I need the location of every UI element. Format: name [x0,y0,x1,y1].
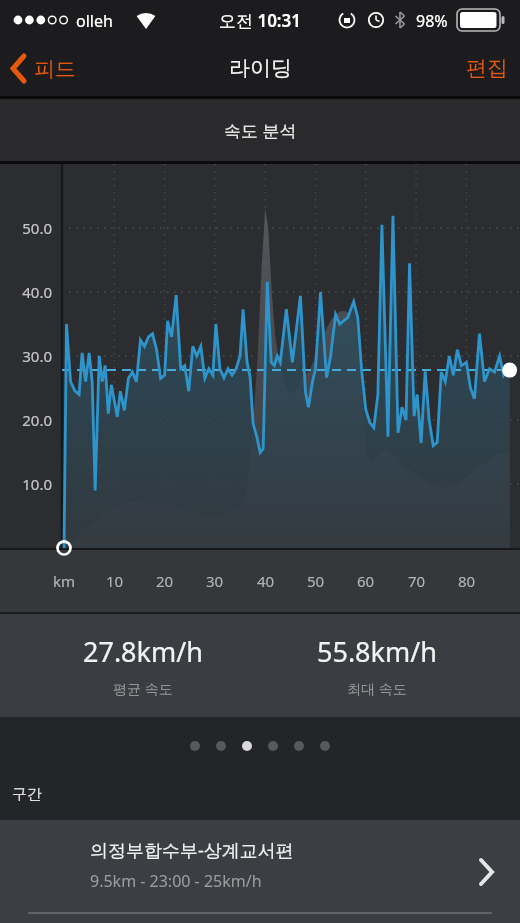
staticText: 편집 [466,55,508,81]
staticText: 속도 분석 [224,119,297,142]
staticText: 27.8km/h [83,633,203,670]
staticText: 라이딩 [229,55,292,81]
staticText: olleh [76,10,113,32]
staticText: 평균 속도 [113,679,173,698]
staticText: km [53,571,76,591]
staticText: 30 [206,571,224,591]
button[interactable] [294,741,304,751]
button[interactable]: 55.8km/h [257,614,497,717]
staticText: 20.0 [22,410,52,430]
staticText: 10.0 [22,474,52,494]
button[interactable] [216,741,226,751]
staticText: 9.5km - 23:00 - 25km/h [90,870,262,892]
staticText: 최대 속도 [347,679,407,698]
staticText: 80 [458,571,476,591]
staticText: 구간 [12,785,42,804]
staticText: 50.0 [22,218,52,238]
staticText: 의정부합수부-상계교서편 [90,838,294,863]
button[interactable]: 피드 [0,55,76,82]
staticText: 70 [408,571,426,591]
staticText: 피드 [34,56,76,82]
button[interactable]: 의정부합수부-상계교서편 [0,820,520,923]
button[interactable]: 27.8km/h [23,614,263,717]
staticText: 40 [257,571,275,591]
button[interactable] [242,741,252,751]
staticText: 30.0 [22,346,52,366]
staticText: 20 [156,571,174,591]
staticText: 50 [307,571,325,591]
staticText: 98% [416,10,448,32]
button[interactable] [320,741,330,751]
staticText: 55.8km/h [317,633,437,670]
staticText: 60 [357,571,375,591]
button[interactable] [190,741,200,751]
staticText: 오전 10:31 [219,9,302,32]
button[interactable]: 편집 [466,55,520,81]
staticText: 10 [106,571,124,591]
button[interactable] [268,741,278,751]
staticText: 40.0 [22,282,52,302]
